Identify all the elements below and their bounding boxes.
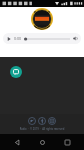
button[interactable]: Volume: [72, 35, 79, 42]
button[interactable]: Instagram: [48, 117, 56, 125]
staticText: 0:00: [14, 36, 22, 41]
button[interactable]: Station logo: [31, 8, 53, 30]
button[interactable]: Home: [34, 134, 50, 150]
button[interactable]: Play: [6, 36, 12, 42]
button[interactable]: Facebook: [38, 117, 46, 125]
button[interactable]: Seek bar: [24, 36, 70, 42]
button[interactable]: Chat: [10, 66, 22, 78]
button[interactable]: Recents: [59, 134, 75, 150]
staticText: Radio · © 2019 · All rights reserved: [0, 127, 84, 131]
button[interactable]: Twitter: [28, 117, 36, 125]
button[interactable]: Back: [9, 134, 25, 150]
